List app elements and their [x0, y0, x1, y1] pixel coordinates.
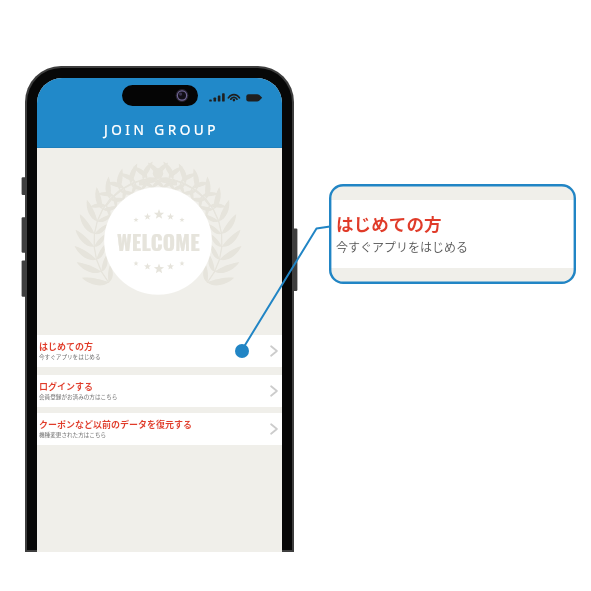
staticText: WELCOME	[117, 226, 200, 257]
staticText: 今すぐアプリをはじめる	[336, 238, 469, 255]
button[interactable]: はじめての方	[37, 335, 282, 367]
staticText: クーポンなど以前のデータを復元する	[39, 418, 193, 431]
staticText: 今すぐアプリをはじめる	[39, 353, 101, 361]
staticText: 会員登録がお済みの方はこちら	[39, 393, 118, 401]
staticText: ログインする	[39, 380, 94, 393]
staticText: 機種変更された方はこちら	[39, 431, 107, 439]
button[interactable]: ログインする	[37, 375, 282, 407]
button[interactable]: クーポンなど以前のデータを復元する	[37, 413, 282, 445]
staticText: JOIN GROUP	[104, 120, 219, 139]
staticText: はじめての方	[336, 211, 442, 236]
staticText: はじめての方	[39, 340, 94, 353]
